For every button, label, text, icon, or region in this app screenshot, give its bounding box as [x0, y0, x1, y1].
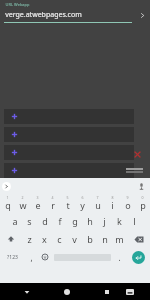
staticText: 4 — [51, 195, 54, 200]
button[interactable]: z — [22, 230, 37, 248]
button[interactable]: 7 — [90, 194, 105, 212]
button[interactable]: Emoji — [38, 248, 51, 266]
other: Add — [11, 167, 18, 174]
staticText: 3 — [36, 195, 39, 200]
staticText: 2 — [21, 195, 24, 200]
staticText: v — [72, 233, 77, 245]
button[interactable]: 3 — [30, 194, 45, 212]
button[interactable]: k — [112, 212, 127, 230]
button[interactable]: a — [7, 212, 22, 230]
button[interactable]: 1 — [0, 194, 15, 212]
button[interactable]: b — [82, 230, 97, 248]
staticText: k — [117, 215, 122, 227]
button[interactable]: Go — [134, 8, 150, 22]
staticText: , — [30, 252, 33, 263]
staticText: o — [125, 199, 131, 211]
button[interactable]: verge.atwebpages.com — [0, 8, 150, 22]
button[interactable]: Shift — [0, 230, 22, 248]
staticText: p — [140, 199, 146, 211]
button[interactable]: x — [37, 230, 52, 248]
staticText: r — [51, 199, 55, 211]
button[interactable]: j — [97, 212, 112, 230]
other: Add — [11, 131, 18, 138]
staticText: t — [66, 199, 70, 211]
staticText: n — [102, 233, 108, 245]
staticText: 0 — [141, 195, 144, 200]
staticText: 1 — [6, 195, 9, 200]
other: Add — [11, 113, 18, 120]
button[interactable]: Expand suggestions — [2, 182, 11, 191]
staticText: e — [35, 199, 41, 211]
button[interactable]: Add — [4, 163, 134, 178]
staticText: f — [58, 215, 62, 227]
button[interactable]: s — [22, 212, 37, 230]
button[interactable]: Home — [58, 283, 76, 300]
button[interactable]: Enter — [132, 251, 145, 264]
button[interactable]: Recent apps — [98, 283, 116, 300]
button[interactable]: m — [112, 230, 127, 248]
button[interactable]: h — [82, 212, 97, 230]
staticText: x — [42, 233, 47, 245]
staticText: z — [27, 233, 32, 245]
staticText: j — [103, 215, 106, 227]
button[interactable]: c — [52, 230, 67, 248]
button[interactable]: Add — [4, 109, 134, 124]
button[interactable]: ?123 — [0, 248, 25, 266]
staticText: l — [133, 215, 136, 227]
button[interactable]: l — [127, 212, 142, 230]
button[interactable]: g — [67, 212, 82, 230]
staticText: 5 — [66, 195, 69, 200]
button[interactable]: f — [52, 212, 67, 230]
button[interactable]: 0 — [135, 194, 150, 212]
button[interactable]: . — [113, 248, 126, 266]
staticText: m — [115, 233, 124, 245]
button[interactable]: Add — [4, 127, 134, 142]
button[interactable]: 4 — [45, 194, 60, 212]
staticText: w — [19, 199, 27, 211]
staticText: 8 — [111, 195, 114, 200]
staticText: d — [42, 215, 48, 227]
staticText: b — [87, 233, 93, 245]
staticText: h — [87, 215, 93, 227]
button[interactable]: v — [67, 230, 82, 248]
other: Add — [11, 149, 18, 156]
staticText: q — [5, 199, 11, 211]
button[interactable]: 2 — [15, 194, 30, 212]
button[interactable]: Delete — [133, 150, 142, 159]
button[interactable]: 5 — [60, 194, 75, 212]
button[interactable]: Voice input — [136, 181, 146, 191]
staticText: . — [118, 252, 121, 263]
staticText: ?123 — [7, 254, 18, 261]
staticText: s — [27, 215, 32, 227]
staticText: a — [12, 215, 18, 227]
staticText: g — [72, 215, 78, 227]
staticText: i — [111, 199, 114, 211]
button[interactable]: Add — [4, 145, 134, 160]
staticText: 7 — [96, 195, 99, 200]
staticText: 9 — [126, 195, 129, 200]
button[interactable]: Back — [18, 283, 36, 300]
button[interactable]: 8 — [105, 194, 120, 212]
button[interactable]: Backspace — [127, 230, 150, 248]
button[interactable]: 9 — [120, 194, 135, 212]
button[interactable]: , — [25, 248, 38, 266]
button[interactable]: 6 — [75, 194, 90, 212]
button[interactable]: Space — [51, 248, 113, 266]
staticText: u — [95, 199, 101, 211]
staticText: 6 — [81, 195, 84, 200]
staticText: verge.atwebpages.com — [5, 10, 82, 20]
staticText: y — [80, 199, 85, 211]
button[interactable]: Switch keyboard — [121, 283, 139, 300]
staticText: c — [57, 233, 62, 245]
button[interactable]: n — [97, 230, 112, 248]
button[interactable]: d — [37, 212, 52, 230]
staticText: URL Webapp — [5, 2, 30, 7]
